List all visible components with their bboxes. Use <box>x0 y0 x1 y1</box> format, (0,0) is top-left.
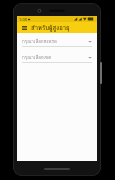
button[interactable]: กรุณาเลือกจังหวัด <box>22 37 92 47</box>
staticText: กรุณาเลือกเขต <box>22 54 88 61</box>
button[interactable]: Open navigation menu <box>20 24 28 32</box>
button[interactable]: กรุณาเลือกเขต <box>22 53 92 63</box>
other: Expand dropdown <box>88 40 92 43</box>
staticText: สำหรับผู้สูงอายุ <box>31 23 70 33</box>
staticText: 1:00 <box>19 17 27 22</box>
staticText: กรุณาเลือกจังหวัด <box>22 38 88 45</box>
other: Expand dropdown <box>88 56 92 59</box>
other: Power button <box>100 62 102 84</box>
